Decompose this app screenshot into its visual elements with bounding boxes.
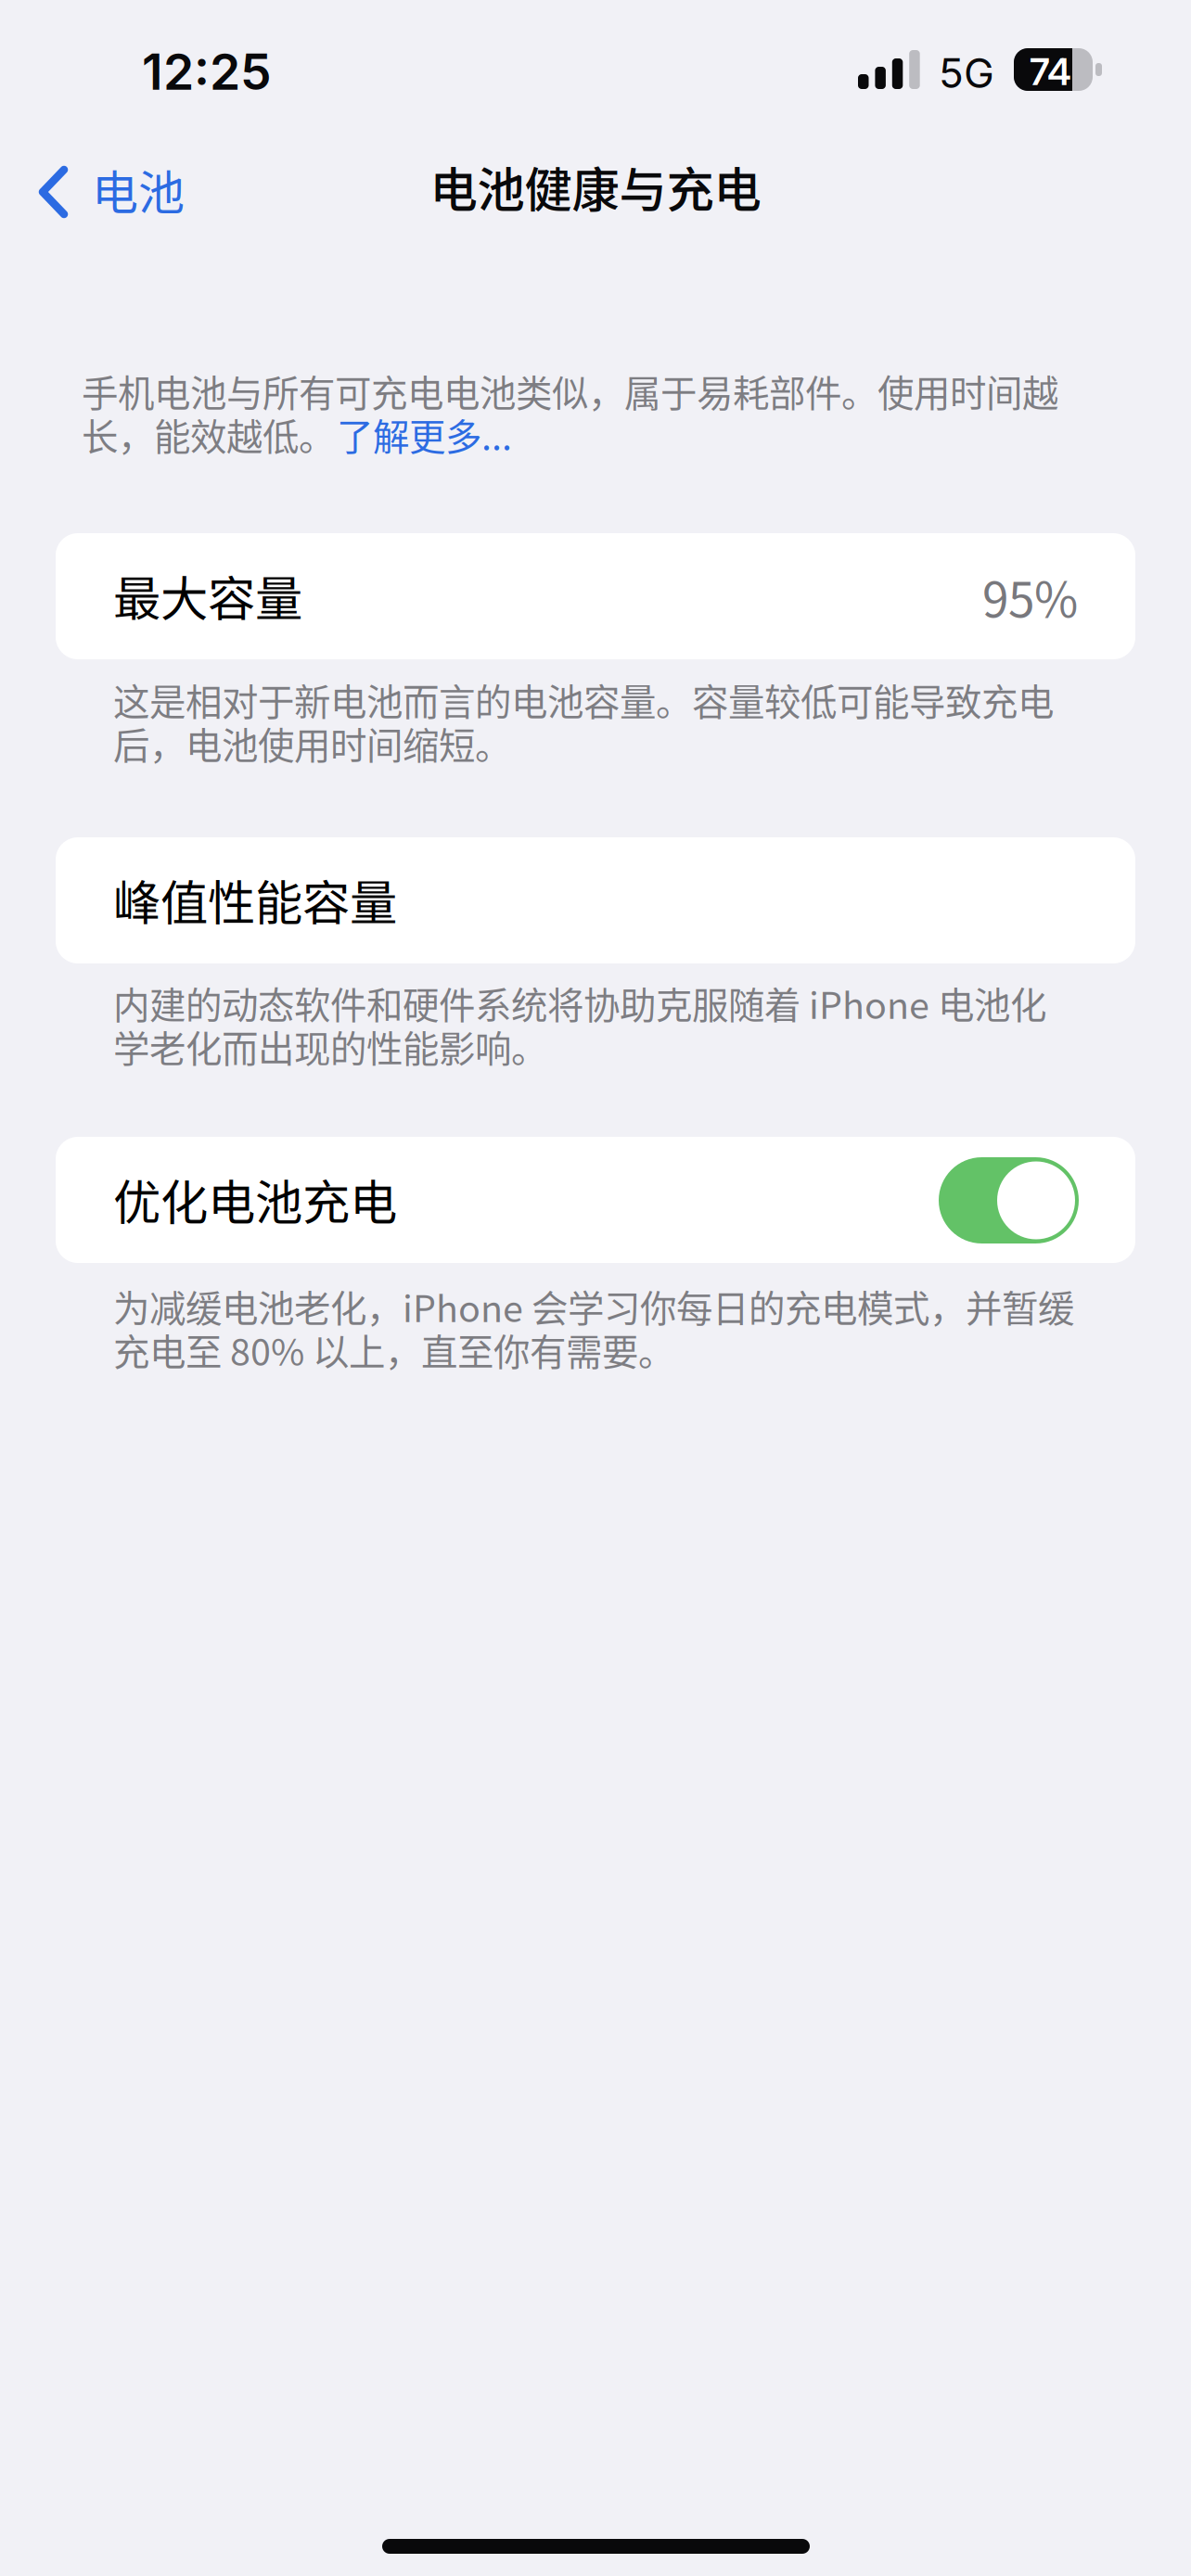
staticText: 后，电池使用时间缩短。 [113, 717, 511, 770]
button[interactable]: 返回 电池 [33, 147, 219, 236]
button[interactable]: 峰值性能容量 [56, 837, 1135, 963]
button[interactable]: 了解更多... [337, 408, 512, 461]
staticText: 最大容量 [113, 561, 302, 630]
button[interactable]: 优化电池充电 [939, 1157, 1079, 1243]
staticText: 学老化而出现的性能影响。 [113, 1020, 547, 1073]
staticText: 长，能效越低。 [82, 408, 335, 461]
staticText: 74 [1030, 49, 1071, 94]
button[interactable]: 最大容量 [56, 533, 1135, 659]
staticText: 充电至 80% 以上，直至你有需要。 [113, 1323, 674, 1376]
staticText: 为减缓电池老化，iPhone 会学习你每日的充电模式，并暂缓 [113, 1280, 1074, 1333]
staticText: 电池健康与充电 [430, 152, 761, 221]
staticText: 这是相对于新电池而言的电池容量。容量较低可能导致充电 [113, 673, 1054, 726]
staticText: 电池 [92, 156, 185, 223]
staticText: 95% [982, 562, 1078, 631]
staticText: 了解更多... [337, 408, 512, 461]
staticText: 12:25 [142, 42, 272, 102]
staticText: 手机电池与所有可充电电池类似，属于易耗部件。使用时间越 [82, 364, 1058, 417]
staticText: 峰值性能容量 [113, 865, 397, 934]
staticText: 内建的动态软件和硬件系统将协助克服随着 iPhone 电池化 [113, 976, 1046, 1029]
staticText: 优化电池充电 [113, 1165, 397, 1234]
staticText: 5G [939, 48, 994, 98]
